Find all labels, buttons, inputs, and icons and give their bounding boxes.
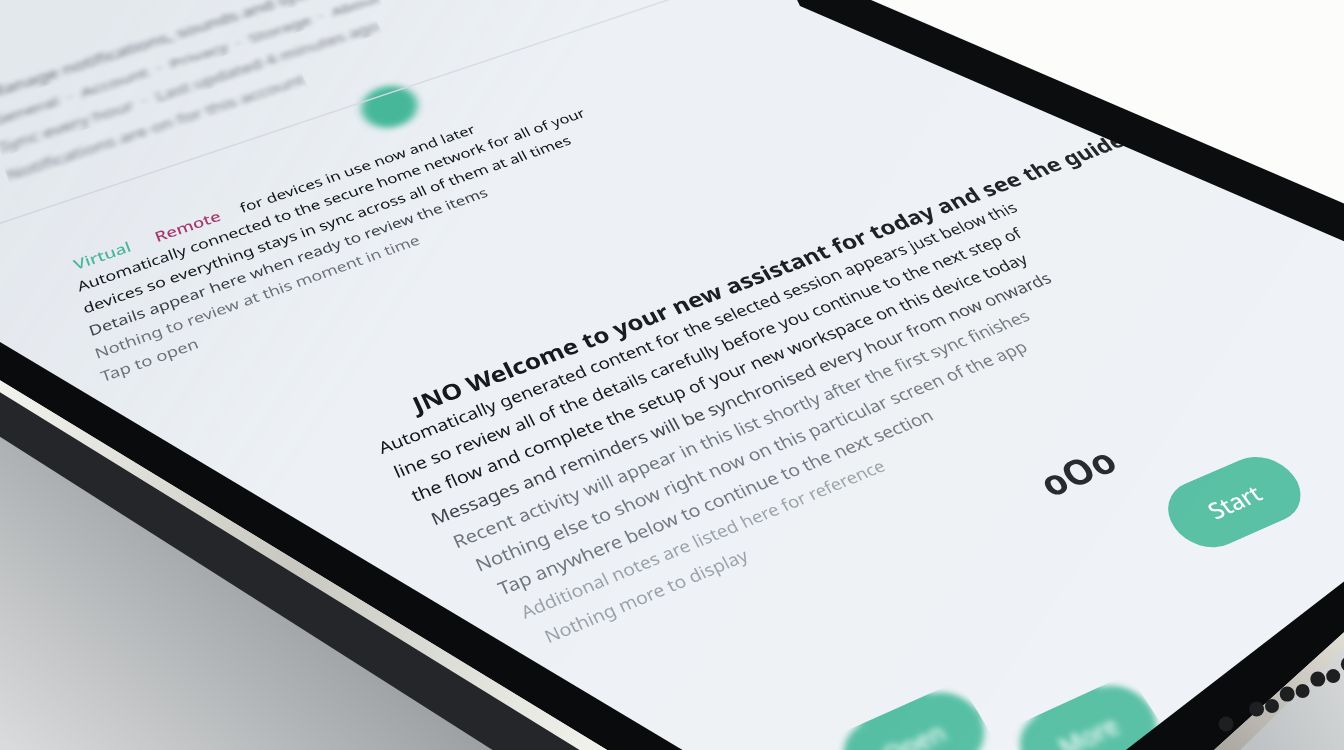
staticText: Open	[876, 715, 952, 750]
staticText: General · Account · Privacy · Storage · …	[0, 0, 383, 130]
staticText: oOo	[1029, 436, 1126, 507]
staticText: Automatically connected to the secure ho…	[74, 104, 589, 296]
staticText: Automatically generated content for the …	[375, 198, 1022, 459]
button[interactable]: More	[1005, 674, 1172, 750]
button[interactable]: Start	[1153, 446, 1316, 558]
staticText: the flow and complete the setup of your …	[407, 249, 1032, 507]
button[interactable]: Profile avatar	[343, 71, 436, 143]
staticText: Tap to open	[98, 333, 202, 387]
staticText: Additional notes are listed here for ref…	[517, 454, 890, 624]
staticText: JNO Welcome to your new assistant for to…	[407, 103, 1195, 419]
staticText: Start	[1200, 477, 1269, 526]
staticText: Nothing else to show right now on this p…	[471, 336, 1032, 577]
staticText: Virtual	[71, 237, 135, 274]
staticText: devices so everything stays in sync acro…	[80, 132, 574, 318]
staticText: More	[1052, 708, 1125, 750]
staticText: Tap anywhere below to continue to the ne…	[494, 404, 938, 601]
staticText: for devices in use now and later	[237, 120, 479, 217]
staticText: Recent activity will appear in this list…	[449, 305, 1035, 554]
staticText: Nothing to review at this moment in time	[92, 231, 423, 363]
staticText: Notifications are on for this account	[4, 70, 308, 184]
staticText: Nothing more to display	[540, 543, 753, 649]
staticText: line so review all of the details carefu…	[390, 223, 1026, 483]
staticText: Remote	[152, 206, 224, 246]
staticText: Details appear here when ready to review…	[86, 183, 492, 341]
staticText: Manage notifications, sounds and system …	[0, 0, 449, 104]
staticText: Messages and reminders will be synchroni…	[427, 267, 1056, 531]
staticText: Sync every hour · Last updated 4 minutes…	[0, 17, 383, 157]
button[interactable]: Open	[829, 680, 999, 750]
